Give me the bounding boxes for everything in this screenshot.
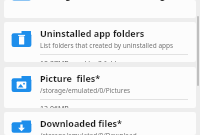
staticText: Arrange unistalled in storage — [40, 0, 171, 1]
other: Downloaded files — [11, 119, 32, 135]
other: Uninstalled app folders — [11, 29, 32, 50]
staticText: List folders that created by uninstalled… — [40, 41, 174, 50]
button[interactable]: Downloaded files — [4, 112, 196, 135]
button[interactable]: Picture files — [4, 67, 196, 108]
staticText: 18.37MB used by 3 folders — [40, 59, 127, 62]
button[interactable]: Uninstalled app folders — [4, 22, 196, 62]
staticText: /storage/emulated/0/Download — [40, 131, 137, 135]
staticText: Downloaded files* — [40, 117, 122, 129]
staticText: Uninstalled app folders — [40, 27, 145, 39]
button[interactable]: Arranged uninstalled folder — [4, 0, 196, 18]
staticText: /storage/emulated/0/Pictures — [40, 86, 131, 95]
other: Arranged uninstalled folder — [11, 0, 32, 2]
other: Picture files — [11, 74, 32, 95]
staticText: 12.06MB — [40, 104, 69, 108]
staticText: Picture files* — [40, 72, 101, 84]
